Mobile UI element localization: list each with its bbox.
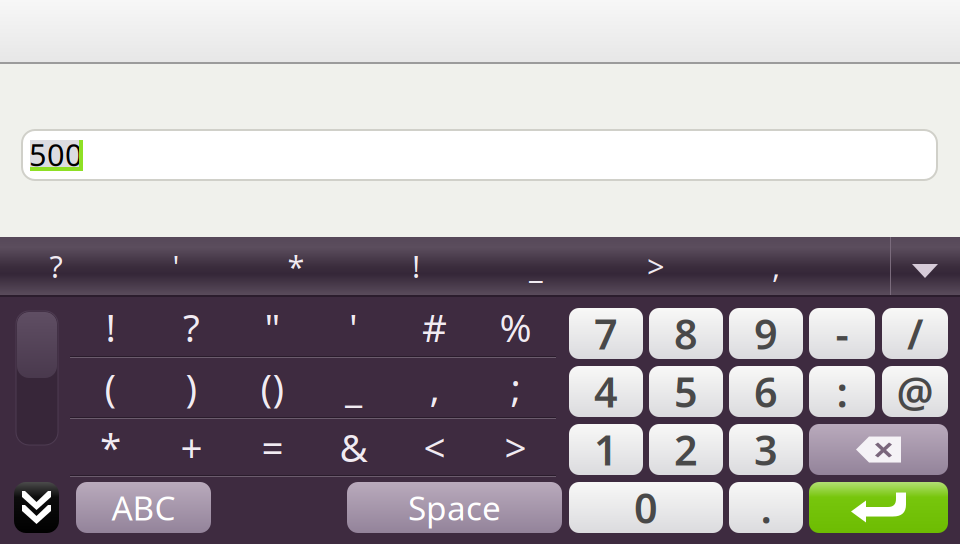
button[interactable]: & <box>313 418 394 476</box>
staticText: _ <box>529 246 543 286</box>
staticText: ) <box>185 361 197 413</box>
button[interactable]: 9 <box>729 308 803 359</box>
staticText: + <box>180 421 202 473</box>
staticText: ; <box>510 361 520 413</box>
button[interactable]: ? <box>0 237 116 295</box>
staticText: 3 <box>754 422 778 477</box>
button[interactable]: Return <box>809 482 948 533</box>
button[interactable]: * <box>236 237 356 295</box>
button[interactable]: # <box>394 298 475 356</box>
button[interactable]: " <box>232 298 313 356</box>
button[interactable]: @ <box>882 366 948 417</box>
button[interactable]: 1 <box>569 424 643 475</box>
button[interactable]: _ <box>313 358 394 416</box>
staticText: , <box>772 246 780 286</box>
button[interactable]: + <box>151 418 232 476</box>
staticText: ? <box>49 246 62 286</box>
staticText: ABC <box>111 485 175 530</box>
staticText: 7 <box>594 306 618 361</box>
staticText: _ <box>345 361 362 413</box>
button[interactable]: : <box>809 366 875 417</box>
staticText: 500 <box>29 134 83 175</box>
button[interactable]: 2 <box>649 424 723 475</box>
button[interactable]: 3 <box>729 424 803 475</box>
staticText: ! <box>105 301 115 353</box>
button[interactable]: % <box>475 298 556 356</box>
staticText: ? <box>183 301 200 353</box>
button[interactable]: ( <box>70 358 151 416</box>
staticText: Space <box>408 485 501 530</box>
staticText: < <box>423 421 445 473</box>
button[interactable]: _ <box>476 237 596 295</box>
staticText: ' <box>349 301 358 353</box>
staticText: 8 <box>674 306 698 361</box>
staticText: 5 <box>674 364 698 419</box>
staticText: > <box>647 246 665 286</box>
staticText: % <box>499 301 531 353</box>
staticText: # <box>422 301 447 353</box>
staticText: 0 <box>634 480 658 535</box>
staticText: () <box>260 361 284 413</box>
button[interactable]: 6 <box>729 366 803 417</box>
staticText: ( <box>104 361 116 413</box>
staticText: * <box>100 421 121 473</box>
staticText: 9 <box>754 306 778 361</box>
button[interactable]: ; <box>475 358 556 416</box>
button[interactable]: < <box>394 418 475 476</box>
staticText: * <box>287 246 304 286</box>
staticText: 1 <box>594 422 618 477</box>
button[interactable]: * <box>70 418 151 476</box>
staticText: . <box>760 480 771 535</box>
button[interactable]: 0 <box>569 482 723 533</box>
button[interactable]: , <box>394 358 475 416</box>
button[interactable]: ? <box>151 298 232 356</box>
button[interactable]: ' <box>116 237 236 295</box>
button[interactable]: () <box>232 358 313 416</box>
button[interactable]: = <box>232 418 313 476</box>
button[interactable]: 5 <box>649 366 723 417</box>
staticText: , <box>429 361 439 413</box>
button[interactable]: Backspace <box>809 424 948 475</box>
staticText: : <box>836 364 847 419</box>
staticText: - <box>835 306 848 361</box>
staticText: / <box>907 306 923 361</box>
staticText: @ <box>896 364 933 419</box>
button[interactable]: 8 <box>649 308 723 359</box>
button[interactable]: ' <box>313 298 394 356</box>
button[interactable]: Hide suggestions <box>894 246 956 296</box>
button[interactable]: 4 <box>569 366 643 417</box>
staticText: ' <box>172 246 179 286</box>
staticText: " <box>264 301 280 353</box>
button[interactable]: / <box>882 308 948 359</box>
staticText: = <box>261 421 283 473</box>
staticText: 2 <box>674 422 698 477</box>
staticText: 4 <box>594 364 618 419</box>
button[interactable]: ! <box>356 237 476 295</box>
button[interactable]: ABC <box>76 482 211 533</box>
button[interactable]: Space <box>347 482 562 533</box>
button[interactable]: Hide keyboard <box>14 482 59 533</box>
staticText: ! <box>412 246 420 286</box>
staticText: 6 <box>754 364 778 419</box>
button[interactable]: > <box>596 237 716 295</box>
button[interactable]: , <box>716 237 836 295</box>
button[interactable]: ! <box>70 298 151 356</box>
button[interactable]: - <box>809 308 875 359</box>
staticText: & <box>339 421 367 473</box>
button[interactable]: > <box>475 418 556 476</box>
button[interactable]: 7 <box>569 308 643 359</box>
button[interactable]: ) <box>151 358 232 416</box>
button[interactable]: . <box>729 482 803 533</box>
staticText: > <box>504 421 526 473</box>
